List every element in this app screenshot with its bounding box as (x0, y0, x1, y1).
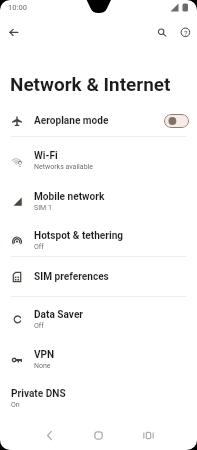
staticText: Hotspot & tethering (34, 230, 124, 242)
staticText: SIM 1 (34, 204, 52, 212)
button[interactable]: Wi-Fi (0, 141, 197, 180)
button[interactable]: Aeroplane mode (0, 101, 197, 140)
staticText: On (11, 401, 20, 409)
staticText: Aeroplane mode (34, 115, 109, 127)
button[interactable]: VPN (0, 340, 197, 379)
staticText: Private DNS (11, 388, 66, 400)
button[interactable]: Home (85, 422, 111, 448)
staticText: Wi-Fi (34, 150, 58, 162)
staticText: Off (34, 322, 44, 330)
button[interactable]: Private DNS (0, 379, 197, 418)
staticText: Off (34, 243, 44, 251)
button[interactable]: Recent apps (135, 422, 161, 448)
button[interactable]: Mobile network (0, 182, 197, 221)
staticText: Network & Internet (10, 73, 171, 95)
button[interactable]: SIM preferences (0, 257, 197, 296)
staticText: ? (184, 29, 188, 37)
button[interactable]: Aeroplane mode switch (164, 114, 189, 128)
button[interactable]: Help (173, 20, 197, 45)
button[interactable]: Data Saver (0, 300, 197, 339)
staticText: VPN (34, 349, 55, 361)
button[interactable]: Search (150, 20, 175, 45)
staticText: SIM preferences (34, 271, 109, 283)
staticText: Data Saver (34, 309, 84, 321)
button[interactable]: Back (36, 422, 62, 448)
staticText: 10:00 (8, 3, 28, 12)
staticText: Networks available (34, 163, 93, 171)
button[interactable]: Navigate up (2, 20, 27, 45)
staticText: None (34, 362, 51, 370)
button[interactable]: Hotspot & tethering (0, 221, 197, 260)
staticText: Mobile network (34, 191, 105, 203)
